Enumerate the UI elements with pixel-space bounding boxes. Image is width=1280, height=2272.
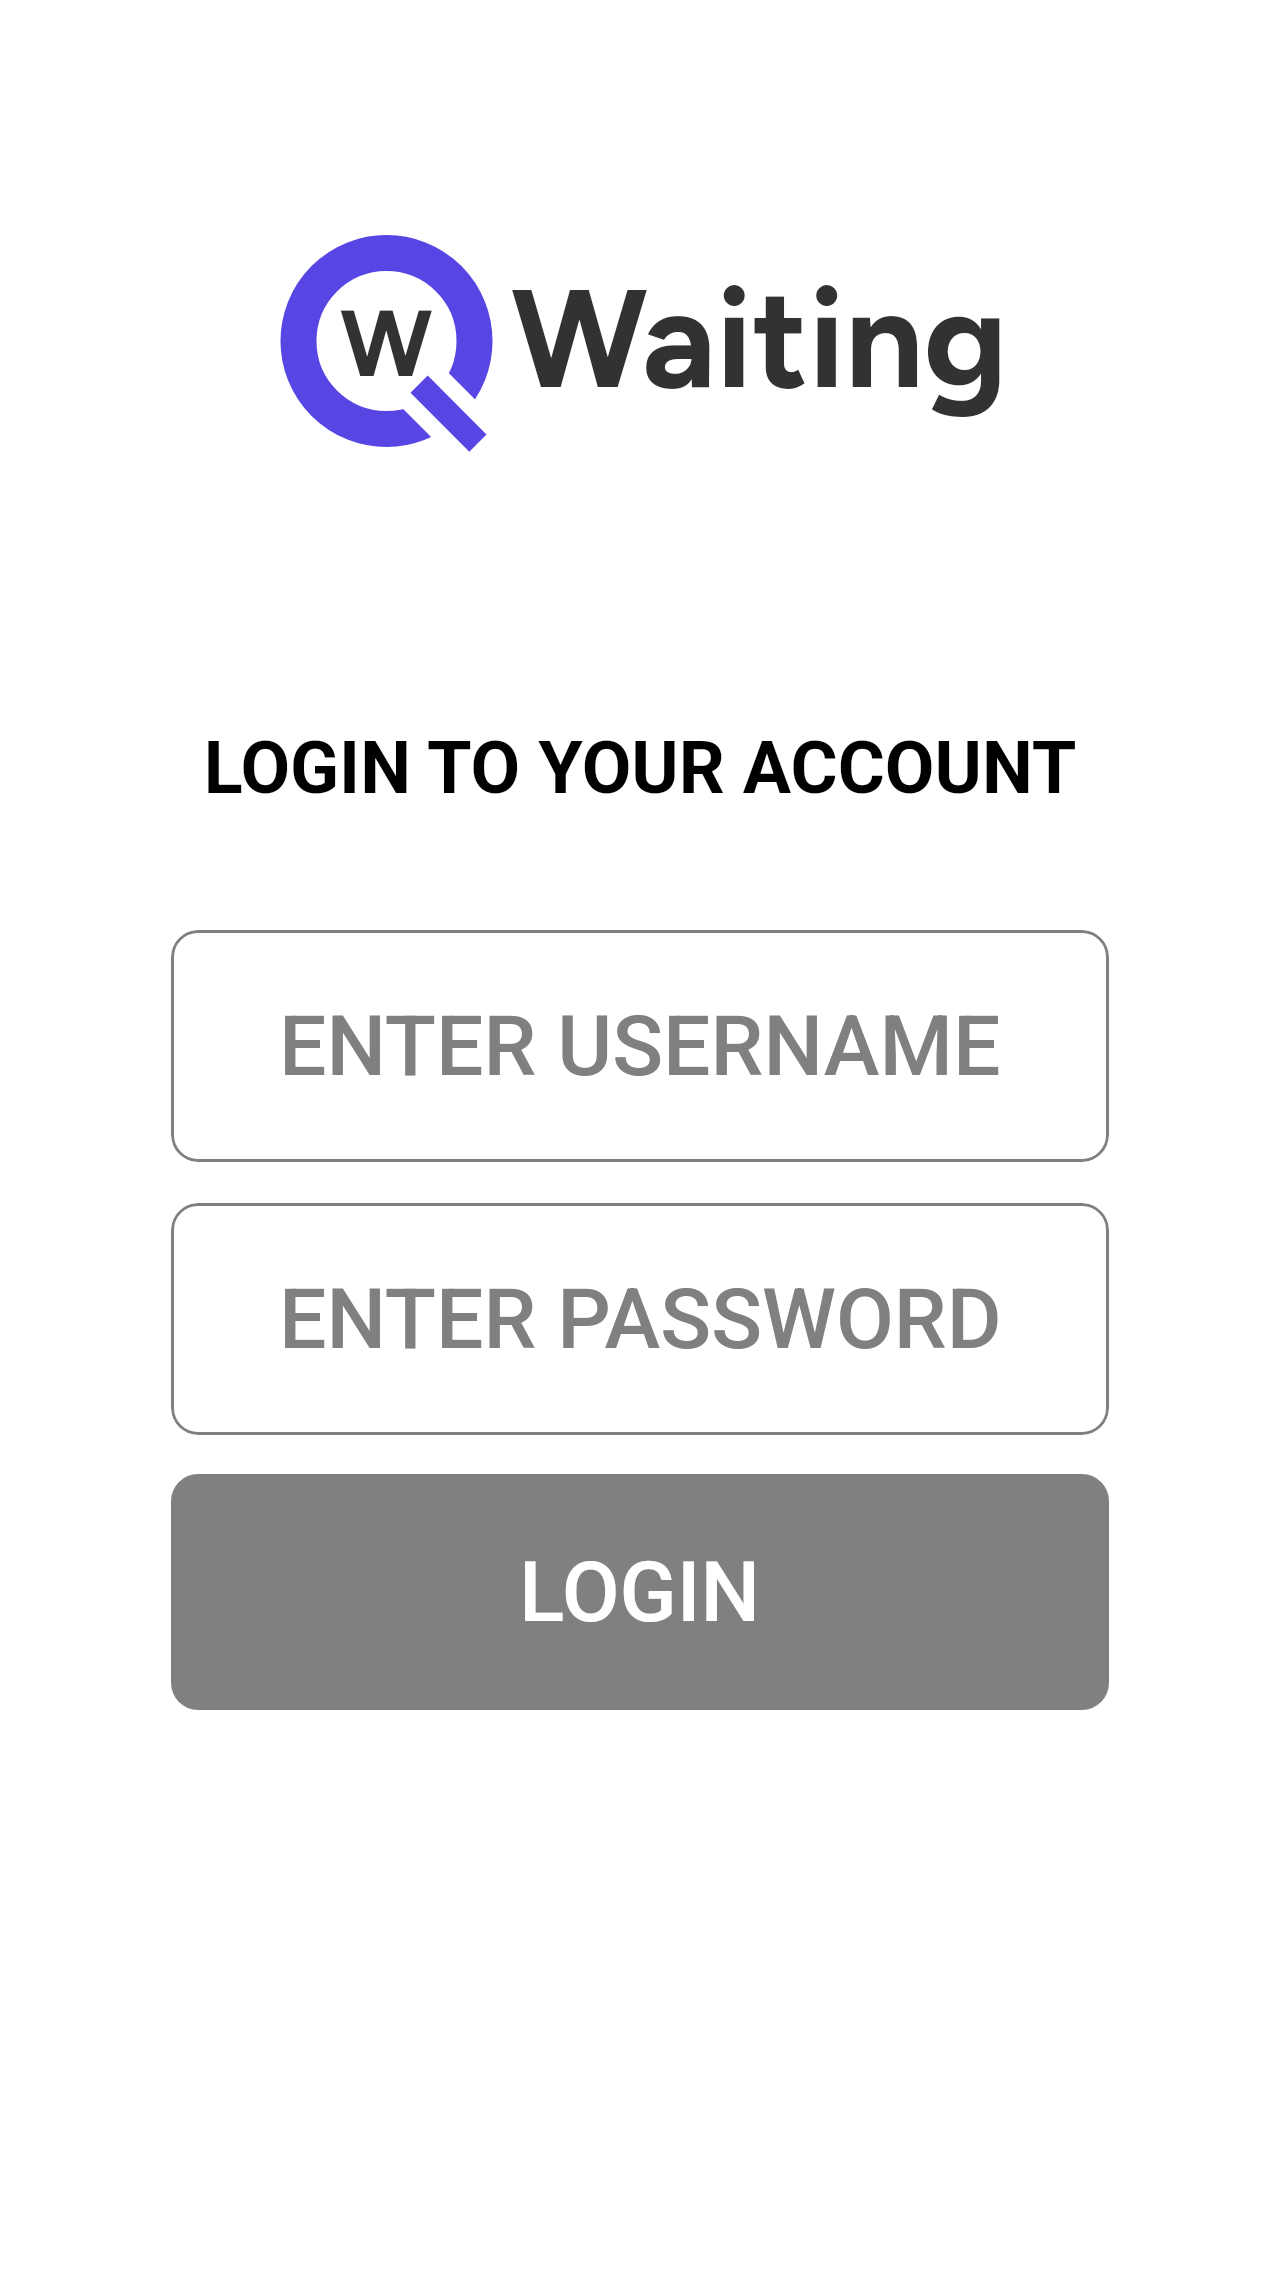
button[interactable]: LOGIN: [171, 1474, 1109, 1710]
staticText: LOGIN TO YOUR ACCOUNT: [0, 726, 1280, 810]
staticText: Waiting: [511, 255, 1008, 422]
button[interactable]: ENTER PASSWORD: [171, 1203, 1109, 1435]
other: QWaiting logo: [260, 215, 520, 475]
staticText: ENTER PASSWORD: [279, 1270, 1002, 1368]
button[interactable]: ENTER USERNAME: [171, 930, 1109, 1162]
staticText: ENTER USERNAME: [279, 997, 1001, 1095]
staticText: W: [340, 287, 433, 400]
staticText: LOGIN: [519, 1543, 761, 1641]
